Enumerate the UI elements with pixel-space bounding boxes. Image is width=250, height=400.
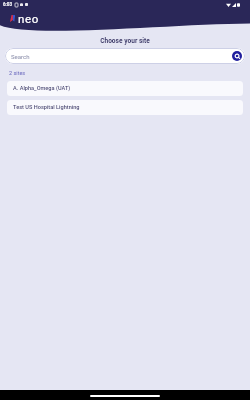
staticText: Choose your site: [0, 37, 250, 45]
button[interactable]: Search: [5, 48, 245, 64]
button[interactable]: A. Alpha_Omega (UAT): [7, 81, 243, 96]
staticText: 2 sites: [9, 70, 26, 76]
staticText: neo: [18, 12, 39, 25]
staticText: A. Alpha_Omega (UAT): [13, 85, 71, 92]
other: Search: [232, 51, 242, 61]
staticText: Test US Hospital Lightning: [13, 104, 80, 111]
button[interactable]: Test US Hospital Lightning: [7, 100, 243, 115]
staticText: 6:03: [3, 2, 13, 7]
staticText: Search: [11, 53, 30, 60]
